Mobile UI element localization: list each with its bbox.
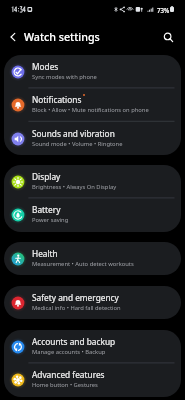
button[interactable]: Accounts and backup <box>4 330 181 363</box>
staticText: Brightness • Always On Display <box>32 183 117 191</box>
staticText: Sounds and vibration <box>32 128 115 139</box>
staticText: Measurement • Auto detect workouts <box>32 260 134 268</box>
staticText: Safety and emergency <box>32 292 119 303</box>
staticText: Medical info • Hard fall detection <box>32 304 121 312</box>
staticText: 73% <box>157 6 170 14</box>
button[interactable]: Back <box>5 29 21 45</box>
button[interactable]: Safety and emergency <box>4 286 181 319</box>
button[interactable]: Sounds and vibration <box>4 122 181 155</box>
staticText: Advanced features <box>32 369 105 380</box>
staticText: Notifications <box>32 94 82 105</box>
button[interactable]: Advanced features <box>4 363 181 396</box>
staticText: Sound mode • Volume • Ringtone <box>32 140 123 148</box>
staticText: Health <box>32 248 58 259</box>
button[interactable]: Notifications <box>4 88 181 121</box>
staticText: Manage accounts • Backup <box>32 348 106 356</box>
staticText: Modes <box>32 61 59 72</box>
button[interactable]: Health <box>4 242 181 275</box>
staticText: Sync modes with phone <box>32 73 97 81</box>
button[interactable]: Display <box>4 165 181 198</box>
staticText: Battery <box>32 204 61 215</box>
staticText: Power saving <box>32 216 69 224</box>
staticText: Accounts and backup <box>32 336 116 347</box>
staticText: Display <box>32 171 61 182</box>
button[interactable]: Battery <box>4 198 181 231</box>
staticText: Block • Allow • Mute notifications on ph… <box>32 106 149 114</box>
button[interactable]: Modes <box>4 55 181 88</box>
button[interactable]: Search <box>160 29 176 45</box>
staticText: Watch settings <box>24 30 100 45</box>
staticText: Home button • Gestures <box>32 381 98 389</box>
